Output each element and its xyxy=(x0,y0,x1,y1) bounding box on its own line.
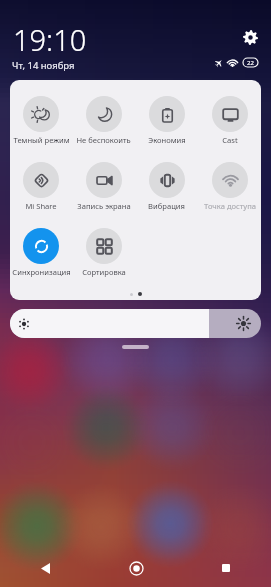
staticText: Экономия xyxy=(148,135,186,145)
staticText: Сортировка xyxy=(82,267,126,277)
button[interactable]: Home xyxy=(91,549,181,587)
button[interactable]: Запись экрана xyxy=(72,162,135,211)
staticText: Точка доступа xyxy=(204,201,256,211)
staticText: Mi Share xyxy=(25,201,57,211)
button[interactable]: Темный режим xyxy=(10,96,72,145)
button[interactable]: Settings xyxy=(241,28,259,46)
button[interactable]: Recents xyxy=(181,549,271,587)
staticText: 22 xyxy=(247,59,254,67)
button[interactable]: Экономия xyxy=(135,96,198,145)
button[interactable]: Синхронизация xyxy=(10,228,72,277)
staticText: Не беспокоить xyxy=(76,135,131,145)
staticText: 19:10 xyxy=(13,20,87,59)
staticText: Cast xyxy=(222,135,238,145)
staticText: Синхронизация xyxy=(12,267,71,277)
button[interactable]: Cast xyxy=(198,96,261,145)
staticText: Темный режим xyxy=(13,135,70,145)
button[interactable]: Вибрация xyxy=(135,162,198,211)
button[interactable]: Back xyxy=(0,549,91,587)
button[interactable]: Сортировка xyxy=(72,228,135,277)
button[interactable]: Mi Share xyxy=(10,162,72,211)
staticText: Чт, 14 ноября xyxy=(12,59,75,72)
staticText: Запись экрана xyxy=(77,201,131,211)
staticText: Вибрация xyxy=(148,201,185,211)
button[interactable]: Brightness xyxy=(10,309,261,338)
button[interactable]: Не беспокоить xyxy=(72,96,135,145)
button[interactable]: Точка доступа xyxy=(198,162,261,211)
